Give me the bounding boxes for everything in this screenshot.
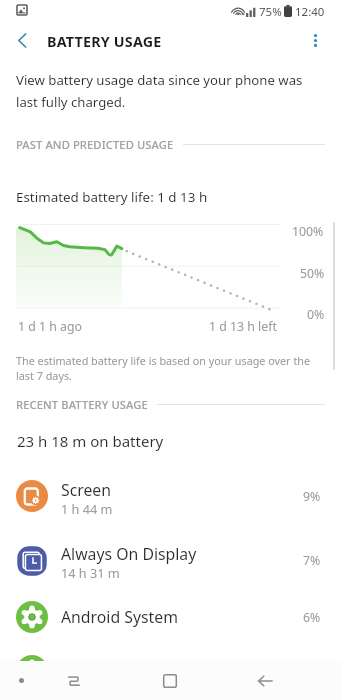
staticText: 14 h 31 m (61, 564, 120, 581)
staticText: 6% (303, 609, 321, 626)
button[interactable]: Recents (59, 661, 89, 700)
button[interactable]: Screen (0, 464, 341, 528)
staticText: Estimated battery life: 1 d 13 h (16, 188, 208, 206)
staticText: 0% (307, 306, 325, 323)
button[interactable]: Back (6, 24, 38, 56)
staticText: 100% (292, 223, 324, 240)
button[interactable]: Always On Display (0, 528, 341, 593)
staticText: 1 d 1 h ago (18, 318, 82, 335)
staticText: RECENT BATTERY USAGE (16, 397, 148, 412)
staticText: Screen (61, 479, 112, 501)
staticText: 12:40 (295, 4, 325, 20)
staticText: 23 h 18 m on battery (17, 431, 164, 451)
staticText: The estimated battery life is based on y… (16, 353, 311, 383)
staticText: Always On Display (61, 543, 197, 565)
staticText: 7% (303, 552, 321, 569)
staticText: BATTERY USAGE (47, 32, 162, 51)
button[interactable]: Google Play Services (0, 641, 341, 700)
button[interactable]: Android System (0, 593, 341, 641)
button[interactable]: Back (250, 661, 280, 700)
staticText: Google Play Services (61, 660, 214, 682)
staticText: 75% (259, 4, 282, 20)
button[interactable]: Home (155, 661, 185, 700)
staticText: Android System (61, 606, 178, 628)
staticText: 50% (300, 265, 325, 282)
staticText: 1 d 13 h left (209, 318, 277, 335)
staticText: 9% (303, 488, 321, 505)
staticText: 1 h 44 m (61, 500, 113, 517)
staticText: View battery usage data since your phone… (16, 71, 316, 111)
button[interactable]: More options (299, 24, 331, 56)
staticText: PAST AND PREDICTED USAGE (16, 137, 174, 152)
